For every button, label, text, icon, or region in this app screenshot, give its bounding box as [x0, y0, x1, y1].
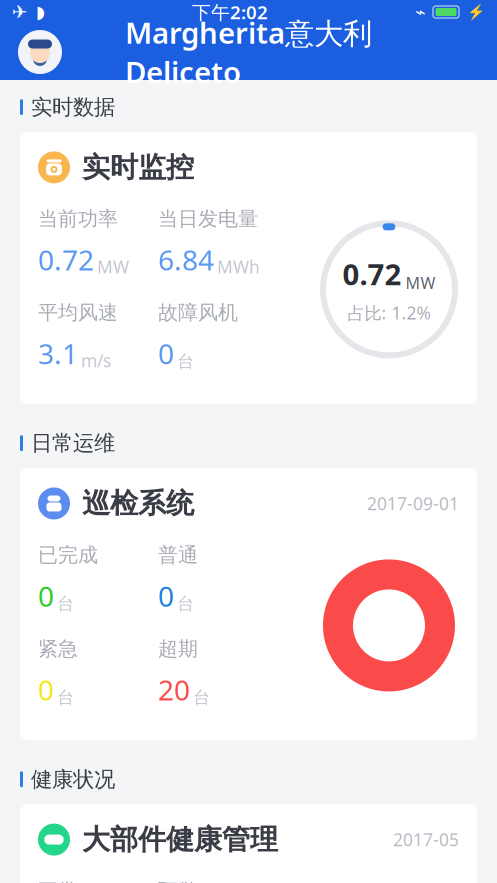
staticText: 下午2:02 [192, 0, 268, 24]
staticText: 健康状况 [31, 766, 115, 792]
staticText: ⌁ [415, 2, 425, 22]
staticText: ✈ [12, 1, 28, 23]
staticText: 台 [177, 593, 194, 614]
staticText: 当前功率 [38, 207, 118, 231]
staticText: 0 [158, 577, 174, 614]
staticText: 20 [158, 671, 190, 708]
staticText: 台 [57, 687, 74, 708]
staticText: MW [405, 272, 435, 293]
staticText: 实时数据 [31, 94, 115, 120]
staticText: m/s [81, 349, 111, 372]
staticText: MWh [217, 255, 260, 278]
staticText: 6.84 [158, 241, 214, 278]
staticText: Margherita意大利Deliceto [125, 13, 372, 91]
staticText: ◗ [36, 2, 45, 22]
staticText: 普通 [158, 543, 198, 567]
staticText: 台 [57, 593, 74, 614]
button[interactable]: 用户头像 [12, 24, 68, 80]
staticText: 台 [193, 687, 210, 708]
staticText: 预警 [158, 879, 198, 883]
button[interactable]: 巡检系统 [0, 468, 497, 740]
staticText: 3.1 [38, 335, 78, 372]
staticText: 2017-09-01 [367, 492, 459, 515]
staticText: MW [97, 255, 129, 278]
staticText: 正常 [38, 879, 78, 883]
button[interactable]: 实时监控 [0, 132, 497, 404]
staticText: 紧急 [38, 636, 78, 661]
staticText: 0 [158, 335, 174, 372]
staticText: 已完成 [38, 543, 98, 567]
staticText: 台 [177, 351, 194, 372]
staticText: ⚡ [467, 4, 485, 20]
staticText: 0 [38, 577, 54, 614]
staticText: 0 [38, 671, 54, 708]
staticText: 当日发电量 [158, 207, 258, 231]
staticText: 超期 [158, 636, 198, 661]
staticText: 平均风速 [38, 300, 118, 325]
staticText: 2017-05 [393, 828, 459, 851]
staticText: 0.72 [342, 254, 401, 293]
button[interactable]: 大部件健康管理 [0, 804, 497, 883]
staticText: 大部件健康管理 [82, 822, 278, 857]
staticText: 0.72 [38, 241, 94, 278]
staticText: 故障风机 [158, 300, 238, 325]
staticText: 日常运维 [31, 430, 115, 456]
staticText: 实时监控 [82, 150, 194, 185]
staticText: 占比: 1.2% [347, 301, 430, 324]
staticText: 巡检系统 [82, 486, 194, 521]
